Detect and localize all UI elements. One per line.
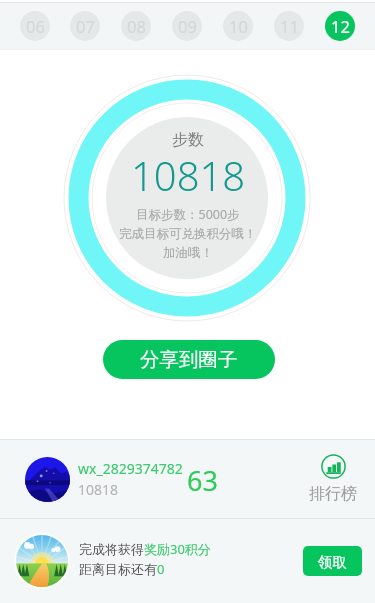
staticText: 12 [331, 15, 350, 37]
button[interactable]: 10 [223, 11, 253, 41]
button[interactable]: 排行榜 [308, 454, 358, 504]
button[interactable]: 06 [20, 11, 50, 41]
button[interactable]: 07 [70, 11, 100, 41]
staticText: 目标步数：5000步 [136, 206, 240, 223]
staticText: 步数 [172, 130, 204, 150]
button[interactable]: 12 [325, 11, 355, 41]
staticText: 10818 [131, 148, 246, 202]
staticText: 09 [178, 15, 197, 37]
button[interactable]: 领取 [303, 546, 362, 576]
staticText: 10818 [78, 480, 119, 499]
button[interactable]: 08 [121, 11, 151, 41]
staticText: 08 [127, 15, 146, 37]
button[interactable]: 11 [274, 11, 304, 41]
staticText: 完成将获得奖励30积分 [79, 540, 211, 558]
staticText: wx_2829374782 [78, 459, 183, 478]
staticText: 11 [280, 15, 299, 37]
button[interactable]: wx_2829374782 [0, 440, 375, 518]
staticText: 完成目标可兑换积分哦！ [119, 226, 257, 242]
staticText: 10 [229, 15, 248, 37]
button[interactable]: 09 [172, 11, 202, 41]
staticText: 07 [76, 15, 95, 37]
staticText: 加油哦！ [163, 245, 213, 261]
staticText: 排行榜 [309, 484, 357, 504]
staticText: 06 [26, 15, 45, 37]
staticText: 63 [187, 462, 218, 499]
button[interactable]: 分享到圈子 [103, 340, 275, 379]
staticText: 领取 [318, 553, 347, 571]
staticText: 距离目标还有0 [79, 560, 165, 578]
staticText: 分享到圈子 [140, 347, 238, 372]
